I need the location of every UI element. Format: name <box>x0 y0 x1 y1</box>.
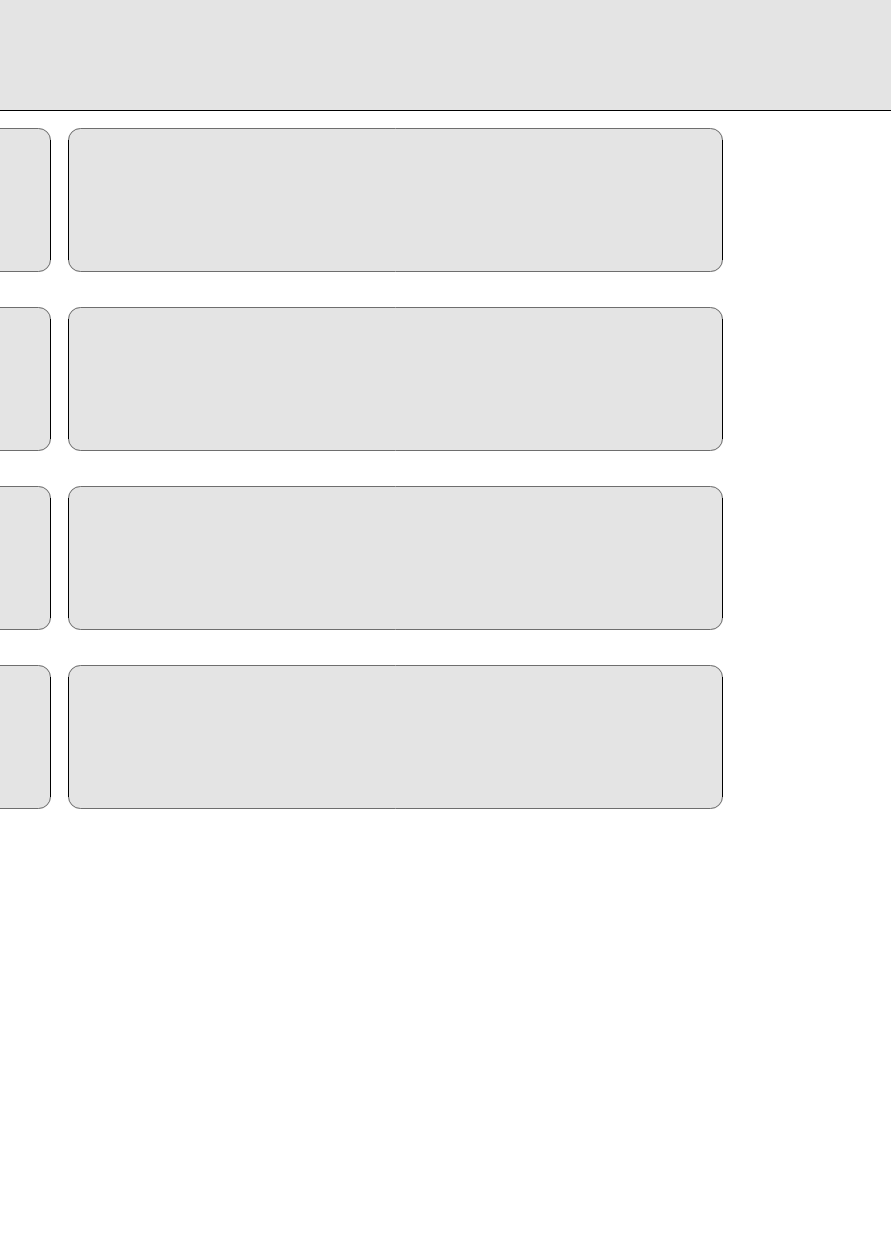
button[interactable]: Item 4 thumbnail <box>0 665 51 809</box>
button[interactable]: Item 4 <box>68 665 723 809</box>
button[interactable]: Item 3 thumbnail <box>0 486 51 630</box>
button[interactable]: Item 1 <box>68 128 723 272</box>
button[interactable]: Item 2 thumbnail <box>0 307 51 451</box>
button[interactable]: Item 2 <box>68 307 723 451</box>
button[interactable]: Item 1 thumbnail <box>0 128 51 272</box>
button[interactable]: Item 3 <box>68 486 723 630</box>
